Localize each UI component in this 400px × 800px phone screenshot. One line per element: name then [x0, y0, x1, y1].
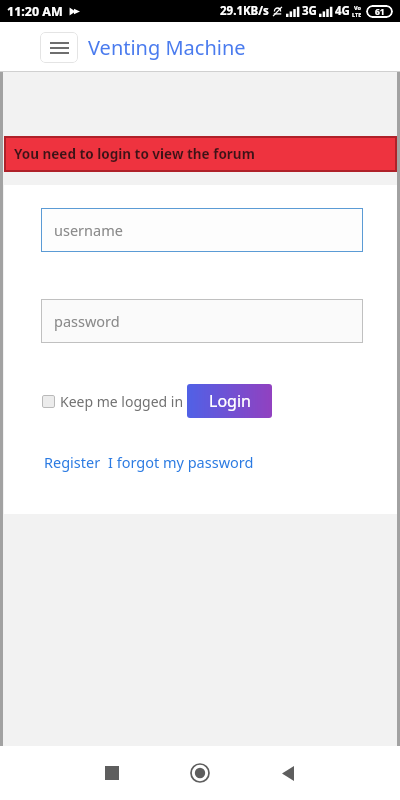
staticText: 3G: [302, 3, 317, 19]
staticText: 29.1KB/s: [220, 3, 269, 19]
staticText: username: [54, 220, 123, 240]
staticText: Vo: [354, 4, 361, 11]
staticText: LTE: [352, 11, 362, 18]
button[interactable]: Home: [178, 751, 222, 795]
staticText: Register: [44, 452, 101, 472]
button[interactable]: Back: [266, 751, 310, 795]
button[interactable]: username: [41, 208, 363, 252]
button[interactable]: Login: [187, 384, 272, 418]
staticText: 61: [375, 6, 385, 18]
staticText: 11:20 AM: [7, 3, 63, 20]
button[interactable]: Recent apps: [90, 751, 134, 795]
staticText: You need to login to view the forum: [14, 145, 255, 163]
staticText: password: [54, 311, 120, 331]
staticText: Keep me logged in: [60, 392, 184, 411]
staticText: I forgot my password: [108, 452, 254, 472]
staticText: Venting Machine: [88, 34, 246, 61]
button[interactable]: Keep me logged in: [42, 395, 55, 408]
button[interactable]: I forgot my password: [108, 452, 254, 472]
staticText: 4G: [335, 3, 350, 19]
button[interactable]: Open navigation menu: [40, 32, 78, 63]
button[interactable]: Register: [44, 452, 101, 472]
staticText: Login: [209, 390, 251, 412]
button[interactable]: password: [41, 299, 363, 343]
